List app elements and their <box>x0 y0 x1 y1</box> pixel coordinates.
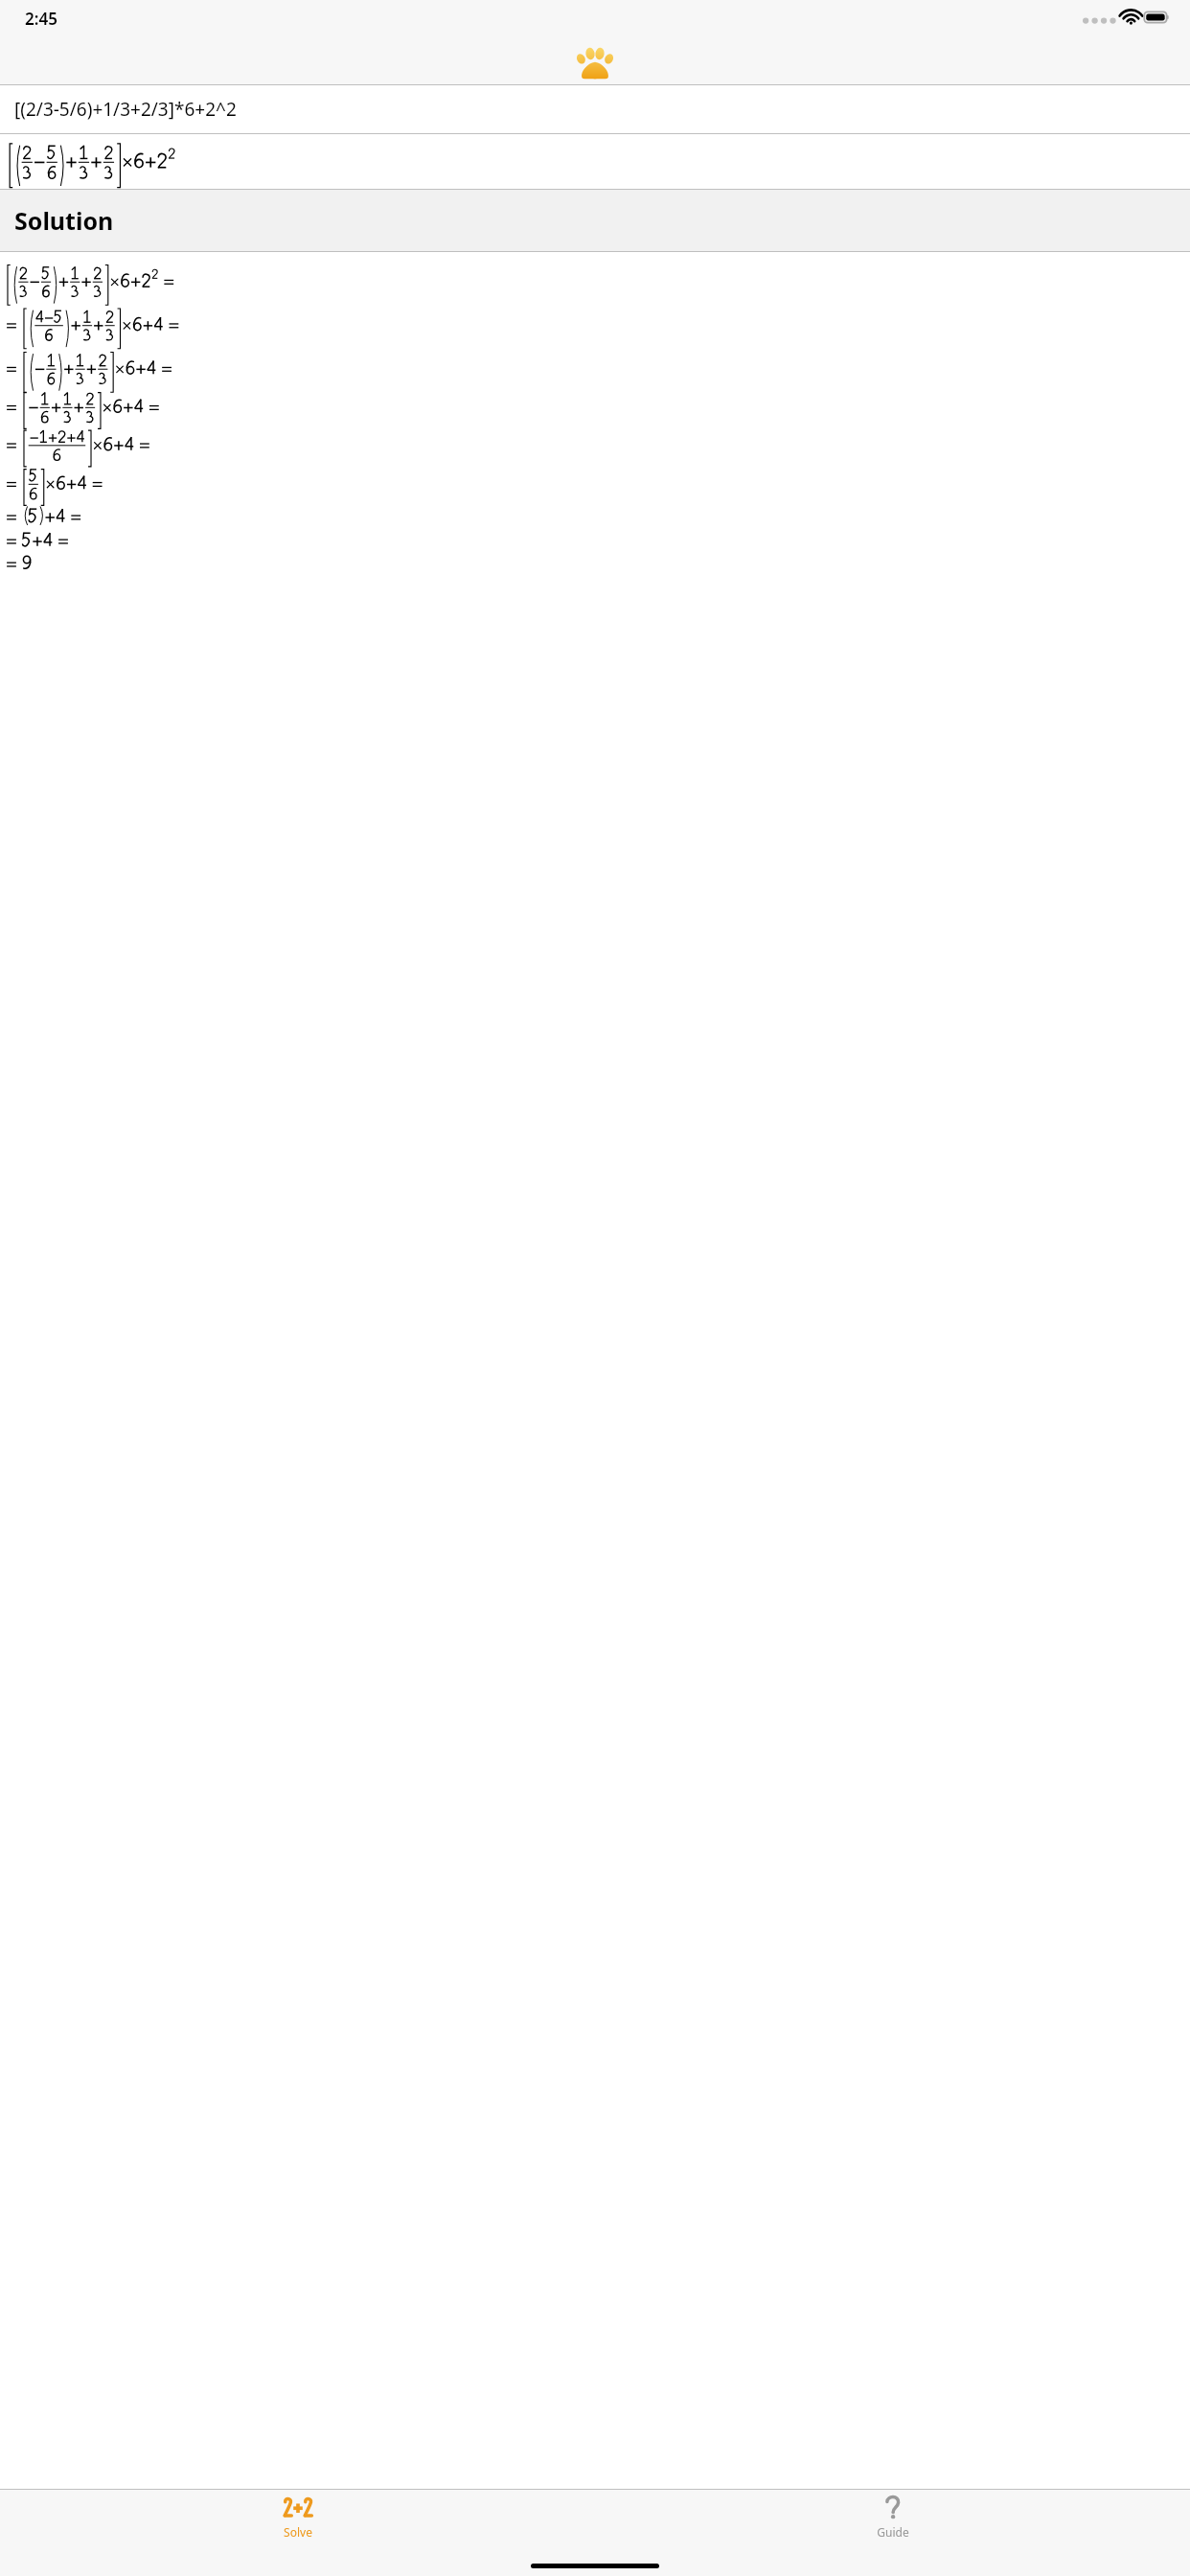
staticText: 2:45 <box>25 8 57 30</box>
button[interactable]: Guide <box>595 2490 1190 2549</box>
button[interactable]: [(2/3-5/6)+1/3+2/3]*6+2^2 <box>0 85 1190 133</box>
staticText: Guide <box>877 2524 909 2540</box>
staticText: Solution <box>14 204 114 237</box>
staticText: [(2/3-5/6)+1/3+2/3]*6+2^2 <box>14 97 237 122</box>
staticText: Solve <box>284 2524 312 2540</box>
button[interactable]: Solve <box>0 2490 595 2549</box>
